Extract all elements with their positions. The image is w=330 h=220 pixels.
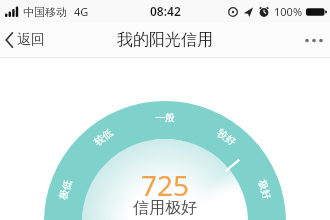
button[interactable]: 返回: [5, 31, 45, 49]
staticText: 我的阳光信用: [117, 30, 213, 50]
staticText: 725: [141, 166, 190, 204]
button[interactable]: [304, 32, 326, 48]
staticText: 信用极好: [133, 198, 197, 218]
staticText: 返回: [17, 31, 45, 49]
staticText: 4G: [74, 4, 89, 19]
staticText: 中国移动: [23, 5, 67, 19]
staticText: 100%: [274, 4, 303, 19]
staticText: 08:42: [150, 3, 181, 19]
